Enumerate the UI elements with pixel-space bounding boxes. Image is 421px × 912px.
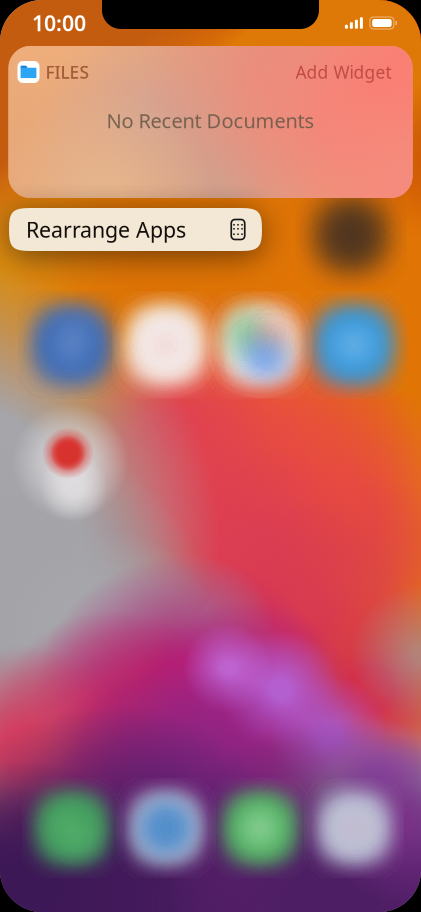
button[interactable]: Add Widget <box>295 60 391 83</box>
staticText: Rearrange Apps <box>26 215 186 244</box>
staticText: FILES <box>45 60 89 83</box>
staticText: Add Widget <box>295 60 391 83</box>
staticText: No Recent Documents <box>106 107 314 134</box>
staticText: 10:00 <box>32 9 86 37</box>
button[interactable]: Rearrange Apps <box>9 208 262 251</box>
